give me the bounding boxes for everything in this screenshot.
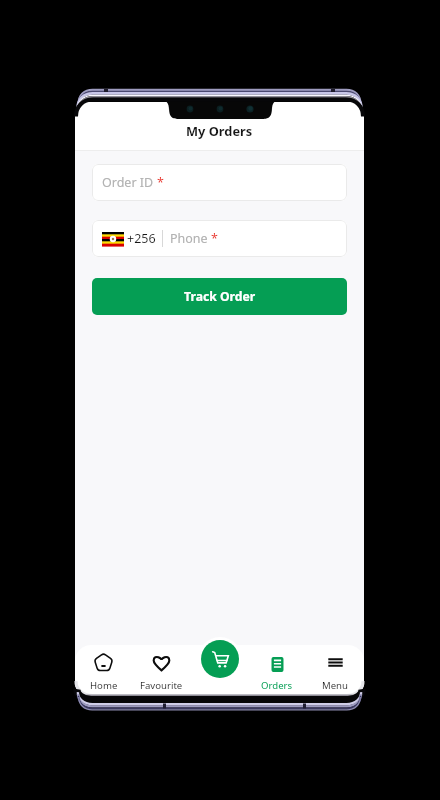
button[interactable]: +256 — [92, 220, 347, 257]
button[interactable]: Orders — [248, 647, 306, 694]
button[interactable]: Favourite — [132, 647, 190, 694]
staticText: Phone — [170, 230, 208, 247]
staticText: Orders — [261, 679, 293, 692]
staticText: * — [157, 174, 164, 191]
button[interactable]: Home — [75, 647, 132, 694]
staticText: Favourite — [140, 679, 183, 692]
staticText: Track Order — [184, 288, 256, 305]
staticText: Order ID — [102, 174, 154, 191]
staticText: My Orders — [186, 122, 253, 139]
staticText: Menu — [322, 679, 348, 692]
staticText: * — [211, 230, 218, 247]
staticText: +256 — [127, 230, 156, 247]
staticText: Home — [90, 679, 118, 692]
button[interactable]: Order ID — [92, 164, 347, 201]
button[interactable]: Track Order — [92, 278, 347, 315]
button[interactable]: Menu — [306, 647, 364, 694]
button[interactable]: Cart — [201, 640, 239, 678]
